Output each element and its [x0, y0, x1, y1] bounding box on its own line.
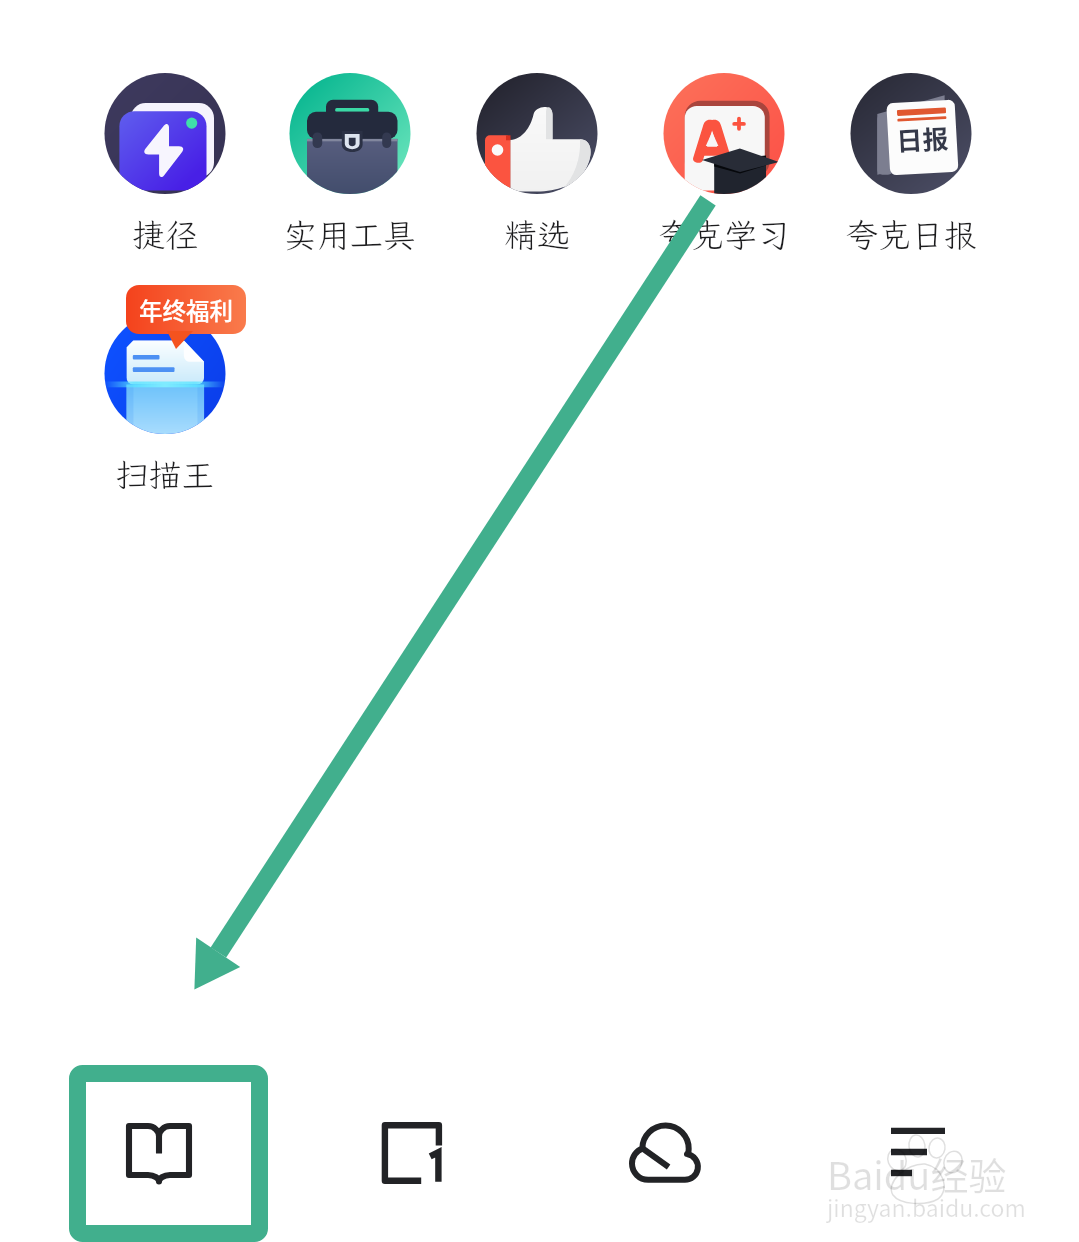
button[interactable]: 标签页	[352, 1092, 472, 1212]
staticText: 捷径	[72, 213, 258, 256]
staticText: 实用工具	[257, 213, 443, 256]
button[interactable]: 书签	[69, 1065, 268, 1242]
staticText: 年终福利	[139, 293, 233, 327]
button[interactable]: 实用工具	[257, 73, 443, 258]
staticText: 夸克日报	[818, 213, 1004, 256]
button[interactable]: 夸克日报	[818, 73, 1004, 258]
staticText: 夸克学习	[631, 213, 817, 256]
button[interactable]: 菜单	[858, 1092, 978, 1212]
button[interactable]: 精选	[444, 73, 630, 258]
button[interactable]: 扫描王	[72, 313, 258, 498]
button[interactable]: 夸克学习	[631, 73, 817, 258]
button[interactable]: 捷径	[72, 73, 258, 258]
staticText: 扫描王	[72, 453, 258, 496]
button[interactable]: 云盘	[605, 1092, 725, 1212]
staticText: 精选	[444, 213, 630, 256]
button[interactable]: 年终福利	[126, 285, 246, 334]
